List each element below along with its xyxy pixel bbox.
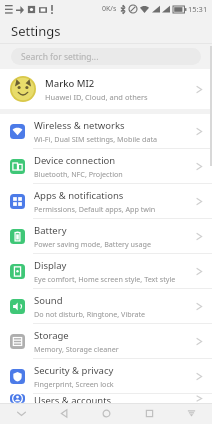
- staticText: Battery: [34, 224, 67, 237]
- button[interactable]: Recents: [138, 403, 160, 424]
- staticText: Apps & notifications: [34, 189, 124, 202]
- other: Open: [196, 231, 203, 242]
- other: Open: [196, 196, 203, 207]
- button[interactable]: Home: [95, 403, 117, 424]
- staticText: Permissions, Default apps, App twin: [34, 204, 156, 214]
- other: Open: [196, 266, 203, 277]
- button[interactable]: Hide: [10, 403, 32, 424]
- other: Open: [196, 301, 203, 312]
- other: Open: [196, 84, 203, 95]
- button[interactable]: Notifications: [180, 403, 202, 424]
- staticText: Memory, Storage cleaner: [34, 344, 119, 354]
- staticText: Power saving mode, Battery usage: [34, 239, 151, 249]
- button[interactable]: Users & accounts: [0, 394, 212, 403]
- other: Open: [196, 126, 203, 137]
- button[interactable]: Security & privacy: [0, 359, 212, 394]
- staticText: Settings: [11, 22, 61, 40]
- staticText: Users & accounts: [34, 394, 112, 403]
- button[interactable]: Battery: [0, 219, 212, 254]
- staticText: 15:31: [188, 4, 208, 14]
- button[interactable]: Wireless & networks: [0, 114, 212, 149]
- staticText: Fingerprint, Screen lock: [34, 379, 114, 389]
- staticText: Security & privacy: [34, 364, 114, 377]
- button[interactable]: Storage: [0, 324, 212, 359]
- staticText: Bluetooth, NFC, Projection: [34, 169, 123, 179]
- button[interactable]: Marko MI2: [0, 69, 212, 109]
- other: Open: [196, 394, 203, 403]
- button[interactable]: Sound: [0, 289, 212, 324]
- button[interactable]: Apps & notifications: [0, 184, 212, 219]
- staticText: Do not disturb, Ringtone, Vibrate: [34, 309, 146, 319]
- button[interactable]: Device connection: [0, 149, 212, 184]
- other: Open: [196, 161, 203, 172]
- staticText: Huawei ID, Cloud, and others: [45, 92, 148, 102]
- staticText: Search for setting...: [21, 51, 99, 63]
- staticText: Storage: [34, 329, 69, 342]
- other: Open: [196, 336, 203, 347]
- button[interactable]: Search for setting...: [11, 48, 201, 65]
- staticText: Eye comfort, Home screen style, Text sty…: [34, 274, 176, 284]
- button[interactable]: Back: [53, 403, 75, 424]
- staticText: Marko MI2: [45, 77, 95, 90]
- staticText: 0K/s: [102, 4, 117, 14]
- staticText: Wi-Fi, Dual SIM settings, Mobile data: [34, 134, 158, 144]
- other: Open: [196, 371, 203, 382]
- staticText: Display: [34, 259, 67, 272]
- staticText: Device connection: [34, 154, 116, 167]
- staticText: Wireless & networks: [34, 119, 125, 132]
- button[interactable]: Display: [0, 254, 212, 289]
- staticText: Sound: [34, 294, 63, 307]
